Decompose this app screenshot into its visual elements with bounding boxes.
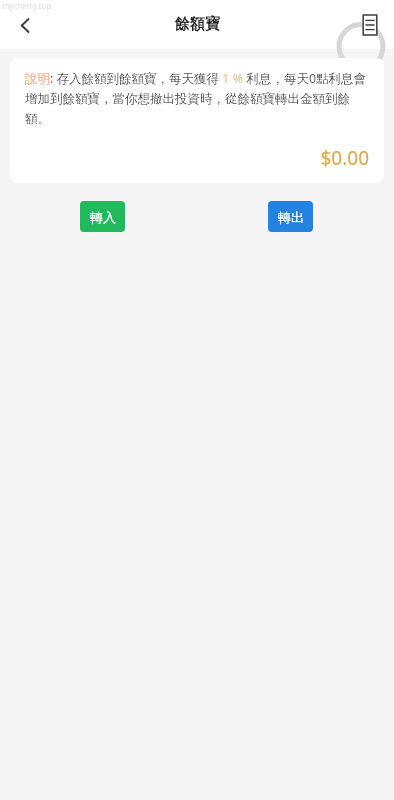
staticText: $0.00 xyxy=(25,145,369,171)
staticText: 轉出 xyxy=(278,209,304,225)
staticText: 餘額寶 xyxy=(175,15,220,34)
staticText: 說明: 存入餘額到餘額寶，每天獲得 1 % 利息，每天0點利息會增加到餘額寶，當… xyxy=(25,70,369,127)
staticText: 轉入 xyxy=(90,209,116,225)
button[interactable]: Back xyxy=(6,6,44,44)
button[interactable]: 轉入 xyxy=(80,201,125,232)
staticText: mycheng.top xyxy=(2,0,52,11)
button[interactable]: 轉出 xyxy=(268,201,313,232)
button[interactable]: Records xyxy=(353,8,387,42)
